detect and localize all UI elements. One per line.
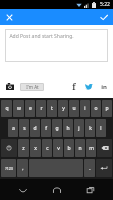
button[interactable]: Share on Twitter — [83, 81, 94, 92]
button[interactable]: Add Post and start Sharing. — [5, 29, 108, 62]
staticText: x — [34, 145, 37, 152]
staticText: l — [100, 125, 102, 132]
staticText: n — [78, 145, 82, 152]
staticText: w — [17, 105, 21, 112]
staticText: k — [89, 125, 92, 132]
button[interactable]: . — [84, 159, 95, 177]
button[interactable]: d — [30, 119, 40, 137]
staticText: I'm At — [26, 84, 39, 90]
button[interactable]: j — [74, 119, 84, 137]
staticText: i — [84, 105, 86, 112]
staticText: Add Post and start Sharing. — [9, 33, 74, 40]
button[interactable]: e — [25, 100, 35, 117]
staticText: v — [57, 145, 60, 152]
button[interactable]: Close — [3, 11, 15, 23]
staticText: g — [55, 125, 59, 132]
button[interactable]: o — [91, 100, 101, 117]
staticText: u — [72, 105, 76, 112]
button[interactable]: c — [42, 139, 52, 157]
staticText: f — [45, 125, 47, 132]
button[interactable]: Back — [12, 183, 34, 197]
staticText: . — [89, 165, 91, 172]
button[interactable]: Home — [46, 183, 68, 197]
button[interactable]: k — [85, 119, 95, 137]
staticText: f — [72, 81, 76, 92]
staticText: b — [67, 145, 71, 152]
button[interactable]: z — [18, 139, 29, 157]
staticText: a — [12, 125, 15, 132]
button[interactable]: l — [96, 119, 106, 137]
button[interactable]: n — [75, 139, 85, 157]
staticText: j — [78, 125, 80, 132]
button[interactable]: i — [80, 100, 90, 117]
button[interactable]: y — [58, 100, 68, 117]
staticText: in — [101, 83, 107, 91]
button[interactable]: ?123 — [1, 159, 16, 177]
button[interactable]: , — [17, 159, 28, 177]
button[interactable]: s — [19, 119, 29, 137]
button[interactable]: I'm At — [20, 83, 44, 91]
staticText: c — [46, 145, 49, 152]
button[interactable]: x — [30, 139, 41, 157]
button[interactable]: Shift — [1, 139, 17, 157]
button[interactable]: Done — [98, 11, 110, 23]
staticText: q — [5, 105, 9, 112]
button[interactable]: Enter — [96, 159, 112, 177]
staticText: m — [89, 145, 94, 152]
staticText: o — [94, 105, 98, 112]
button[interactable]: q — [1, 100, 12, 117]
button[interactable]: w — [13, 100, 24, 117]
staticText: z — [22, 145, 25, 152]
button[interactable]: r — [36, 100, 46, 117]
button[interactable]: Add photo — [4, 81, 15, 92]
staticText: p — [105, 105, 109, 112]
button[interactable]: t — [47, 100, 57, 117]
button[interactable]: Backspace — [97, 139, 112, 157]
button[interactable]: h — [63, 119, 73, 137]
staticText: s — [23, 125, 26, 132]
staticText: d — [33, 125, 37, 132]
staticText: ?123 — [5, 166, 13, 171]
button[interactable]: v — [53, 139, 63, 157]
staticText: 5:22 — [100, 1, 110, 8]
button[interactable]: p — [102, 100, 112, 117]
button[interactable]: a — [8, 119, 18, 137]
button[interactable]: f — [41, 119, 51, 137]
staticText: r — [40, 105, 43, 112]
button[interactable]: u — [69, 100, 79, 117]
button[interactable]: Share on LinkedIn — [98, 81, 109, 92]
staticText: e — [29, 105, 32, 112]
button[interactable]: Share on Facebook — [68, 81, 79, 92]
staticText: h — [66, 125, 70, 132]
staticText: , — [22, 165, 24, 172]
button[interactable]: Recent apps — [79, 183, 101, 197]
button[interactable]: m — [86, 139, 96, 157]
staticText: t — [51, 105, 53, 112]
button[interactable]: b — [64, 139, 74, 157]
button[interactable]: g — [52, 119, 62, 137]
staticText: y — [62, 105, 65, 112]
